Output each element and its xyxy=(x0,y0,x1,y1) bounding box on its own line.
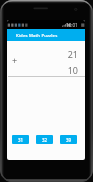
staticText: 10:01 xyxy=(66,22,78,28)
staticText: 21 xyxy=(7,48,78,60)
staticText: 39 xyxy=(66,137,72,143)
staticText: 10 xyxy=(7,64,78,76)
button[interactable]: 32 xyxy=(36,135,53,144)
button[interactable]: 39 xyxy=(60,135,77,144)
button[interactable]: 31 xyxy=(12,135,29,144)
staticText: + xyxy=(12,54,18,66)
staticText: Kides Math Puzzles xyxy=(16,32,58,38)
staticText: 32 xyxy=(42,137,48,143)
staticText: 31 xyxy=(18,137,24,143)
